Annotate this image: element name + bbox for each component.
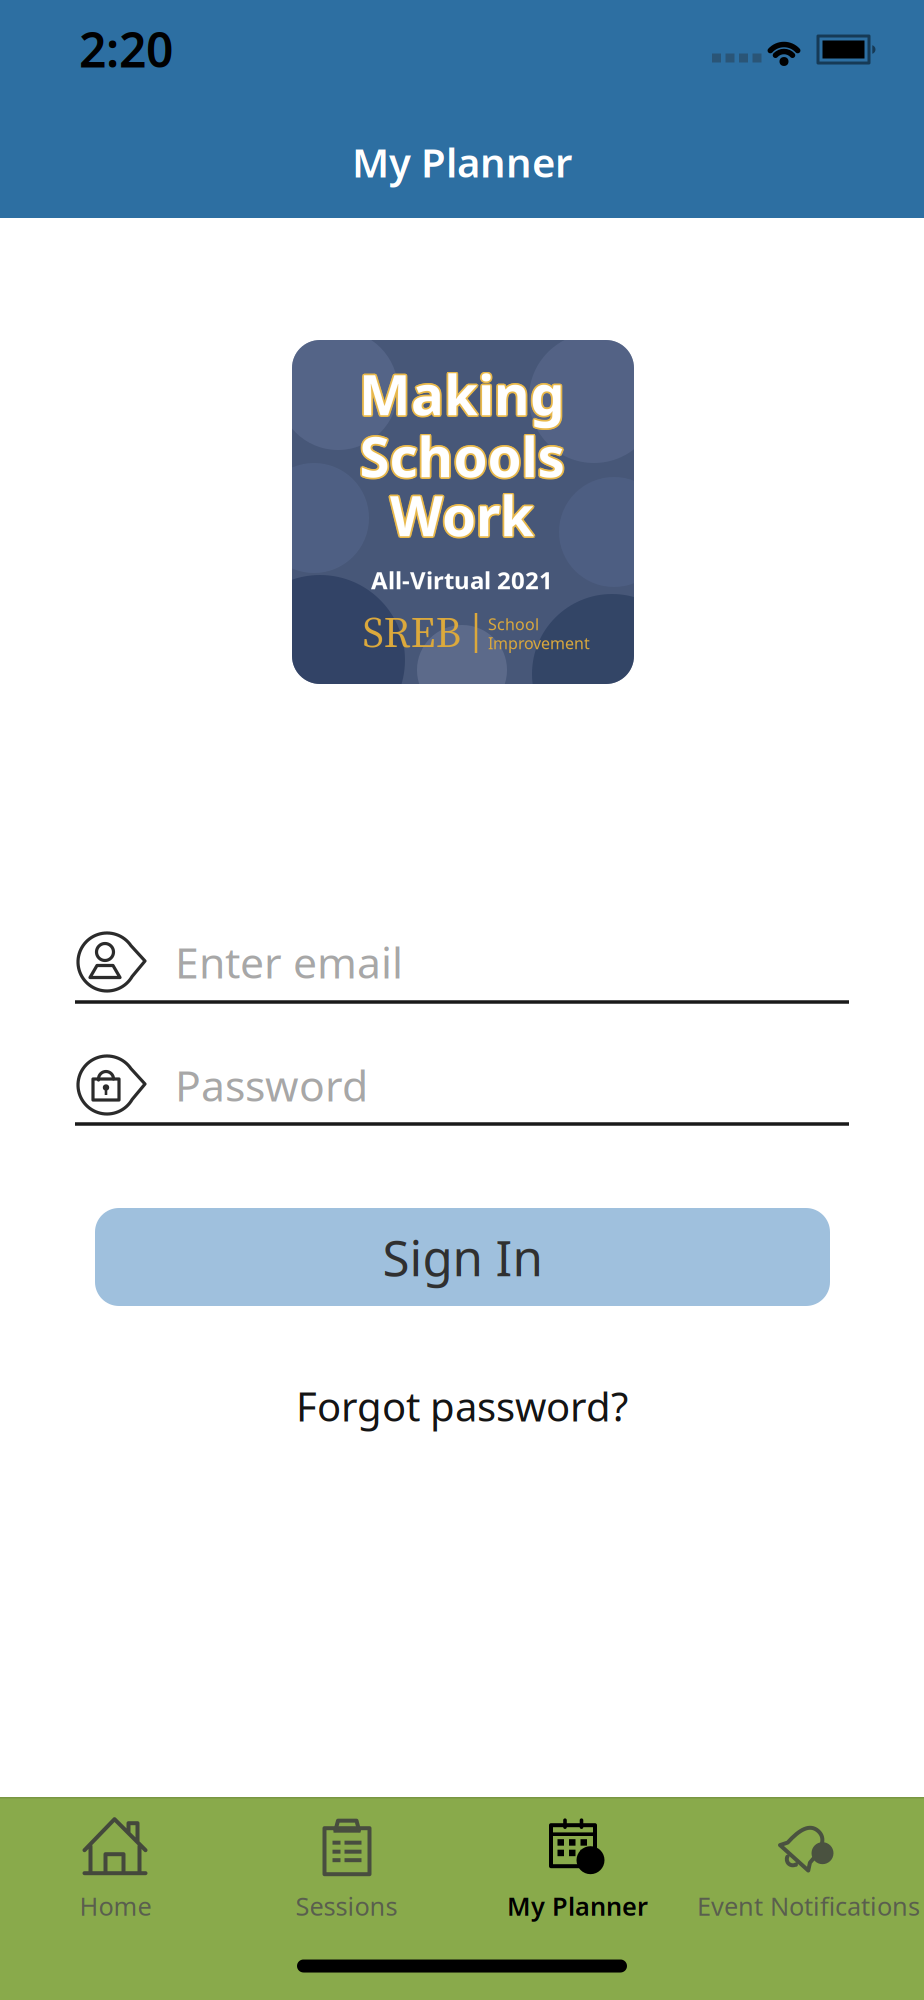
staticText: Schools — [361, 418, 566, 491]
staticText: Making — [360, 356, 566, 429]
staticText: Schools — [358, 420, 563, 492]
staticText: Work — [391, 477, 535, 550]
staticText: My Planner — [507, 1889, 648, 1923]
button[interactable]: Enter email — [175, 932, 775, 992]
staticText: Work — [391, 480, 535, 552]
staticText: Work — [392, 479, 536, 551]
staticText: Making — [360, 359, 566, 431]
staticText: Schools — [359, 421, 564, 494]
staticText: Sign In — [382, 1224, 542, 1290]
staticText: Event Notifications — [697, 1889, 920, 1923]
staticText: Work — [388, 479, 532, 551]
staticText: All-Virtual 2021 — [371, 564, 553, 596]
button[interactable]: Forgot password? — [296, 1379, 628, 1432]
staticText: Schools — [358, 421, 563, 493]
staticText: Password — [175, 1057, 368, 1113]
staticText: Work — [389, 480, 533, 552]
staticText: Work — [390, 477, 534, 550]
staticText: Home — [79, 1889, 151, 1923]
button[interactable]: Password — [175, 1055, 775, 1115]
staticText: Forgot password? — [296, 1379, 628, 1432]
staticText: Making — [359, 356, 565, 429]
staticText: Making — [358, 359, 564, 431]
staticText: School — [488, 613, 539, 635]
staticText: Sessions — [295, 1889, 397, 1923]
staticText: Schools — [359, 418, 564, 491]
button[interactable]: My Planner — [507, 1815, 648, 1923]
button[interactable]: Sign In — [95, 1208, 830, 1306]
staticText: Schools — [358, 418, 563, 491]
button[interactable]: Home — [79, 1815, 151, 1923]
staticText: Schools — [359, 420, 564, 492]
staticText: Schools — [361, 420, 566, 492]
button[interactable]: Email — [66, 929, 148, 995]
staticText: SREB — [362, 603, 461, 661]
button[interactable]: Password — [66, 1052, 148, 1118]
staticText: My Planner — [352, 135, 572, 188]
staticText: Work — [390, 480, 534, 553]
staticText: Enter email — [175, 934, 403, 990]
staticText: Work — [390, 479, 534, 551]
staticText: Making — [359, 359, 565, 432]
staticText: Making — [359, 358, 565, 430]
staticText: 2:20 — [79, 17, 173, 81]
staticText: Making — [357, 358, 563, 430]
button[interactable]: Sessions — [295, 1815, 397, 1923]
staticText: Improvement — [488, 632, 590, 654]
button[interactable]: Event Notifications — [697, 1815, 920, 1923]
staticText: Work — [389, 477, 533, 550]
staticText: Schools — [361, 421, 566, 493]
staticText: Making — [361, 358, 567, 430]
staticText: Making — [358, 356, 564, 429]
